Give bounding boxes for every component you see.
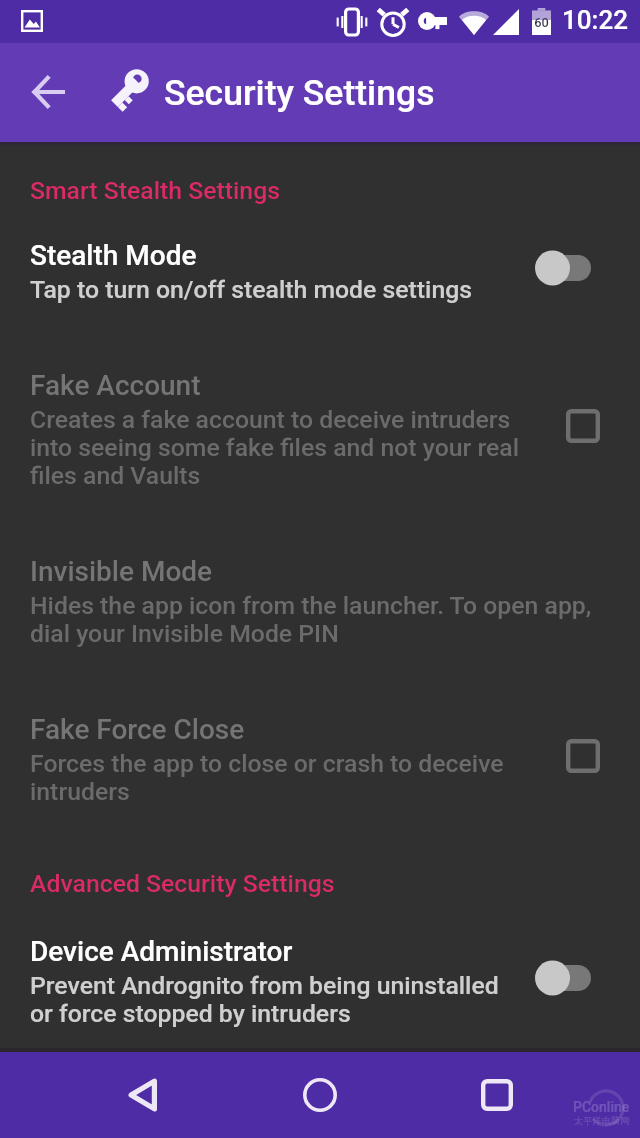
staticText: Prevent Andrognito from being uninstalle… [30, 972, 526, 1028]
button[interactable]: Stealth Mode [0, 239, 640, 304]
staticText: Security Settings [164, 72, 435, 114]
staticText: Forces the app to close or crash to dece… [30, 750, 526, 806]
button[interactable]: Invisible Mode [0, 555, 640, 648]
staticText: Device Administrator [30, 935, 293, 968]
button[interactable]: Checkbox [566, 739, 600, 773]
button[interactable]: Toggle switch [535, 958, 591, 998]
staticText: PConline [573, 1099, 630, 1115]
staticText: Smart Stealth Settings [30, 176, 280, 205]
staticText: Hides the app icon from the launcher. To… [30, 592, 616, 648]
button[interactable]: Checkbox [566, 409, 600, 443]
button[interactable]: Security key [108, 66, 152, 110]
button[interactable]: Device Administrator [0, 935, 640, 1028]
staticText: Invisible Mode [30, 555, 213, 588]
button[interactable]: Back [107, 1052, 177, 1138]
staticText: 10:22 [562, 5, 628, 35]
staticText: Advanced Security Settings [30, 869, 335, 898]
staticText: Fake Account [30, 369, 201, 402]
button[interactable]: Recents [462, 1052, 532, 1138]
staticText: Fake Force Close [30, 713, 245, 746]
button[interactable]: Fake Account [0, 369, 640, 490]
button[interactable]: Fake Force Close [0, 713, 640, 806]
staticText: 太平洋电脑网 [574, 1115, 630, 1127]
button[interactable]: Back [5, 48, 93, 136]
staticText: 60 [532, 15, 551, 30]
button[interactable]: Toggle switch [535, 248, 591, 288]
staticText: Stealth Mode [30, 239, 197, 272]
staticText: Creates a fake account to deceive intrud… [30, 406, 526, 490]
button[interactable]: Home [284, 1052, 356, 1138]
staticText: Tap to turn on/off stealth mode settings [30, 276, 473, 304]
